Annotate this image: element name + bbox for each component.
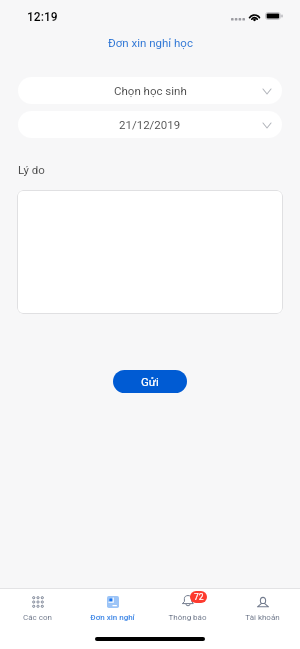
staticText: 12:19 <box>27 10 58 24</box>
other: Children <box>32 596 44 608</box>
button[interactable]: Gửi <box>113 370 187 393</box>
staticText: Đơn xin nghỉ học <box>108 36 193 49</box>
staticText: 21/12/2019 <box>119 118 181 131</box>
staticText: 72 <box>194 592 204 602</box>
staticText: Đơn xin nghỉ <box>90 613 135 622</box>
staticText: Chọn học sinh <box>114 84 187 97</box>
staticText: Lý do <box>18 163 45 176</box>
button[interactable]: Account <box>225 589 300 625</box>
staticText: Tài khoản <box>245 613 280 622</box>
other: Notifications <box>182 594 194 606</box>
staticText: Gửi <box>141 375 159 388</box>
staticText: Thông báo <box>168 613 207 622</box>
button[interactable]: Chọn học sinh <box>18 77 282 104</box>
other: Leave request <box>107 596 119 608</box>
button[interactable] <box>17 190 283 314</box>
button[interactable]: 21/12/2019 <box>18 111 282 138</box>
button[interactable]: Leave request <box>75 589 150 625</box>
staticText: Các con <box>23 613 52 622</box>
other: Account <box>257 596 269 608</box>
button[interactable]: Notifications <box>150 589 225 625</box>
button[interactable]: Children <box>0 589 75 625</box>
